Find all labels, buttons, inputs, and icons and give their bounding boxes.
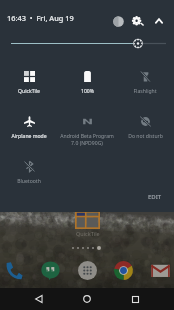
button[interactable]: 100% xyxy=(58,62,116,107)
staticText: Flashlight xyxy=(133,88,157,95)
button[interactable]: Settings xyxy=(128,11,148,31)
button[interactable]: Airplane mode xyxy=(0,107,58,152)
button[interactable]: Phone xyxy=(3,260,24,281)
button[interactable]: Home xyxy=(76,288,98,310)
button[interactable]: Chrome xyxy=(113,260,134,281)
button[interactable]: Flashlight xyxy=(116,62,174,107)
button[interactable]: EDIT xyxy=(144,190,166,204)
button[interactable]: Android Beta Program 7.0 (NPD90G) xyxy=(58,107,116,152)
staticText: 100% xyxy=(81,88,94,95)
staticText: Do not disturb xyxy=(128,133,163,140)
staticText: 16:43 • Fri, Aug 19 xyxy=(7,13,74,23)
button[interactable]: Back xyxy=(28,288,50,310)
button[interactable]: Hangouts xyxy=(40,260,61,281)
button[interactable]: Collapse xyxy=(149,11,169,31)
button[interactable]: Gmail xyxy=(150,260,171,281)
staticText: Airplane mode xyxy=(11,133,47,140)
staticText: Bluetooth xyxy=(17,178,41,185)
button[interactable]: Apps xyxy=(77,260,98,281)
button[interactable]: Recents xyxy=(124,288,146,310)
staticText: QuickTile xyxy=(76,230,100,237)
staticText: Android Beta Program 7.0 (NPD90G) xyxy=(60,133,114,146)
button[interactable]: Do not disturb xyxy=(116,107,174,152)
button[interactable]: QuickTile xyxy=(0,62,58,107)
button[interactable]: 16:43 • Fri, Aug 19 xyxy=(3,11,78,25)
staticText: QuickTile xyxy=(18,88,40,95)
staticText: EDIT xyxy=(148,193,162,201)
button[interactable]: User xyxy=(108,11,128,31)
button[interactable]: Bluetooth xyxy=(0,152,58,197)
